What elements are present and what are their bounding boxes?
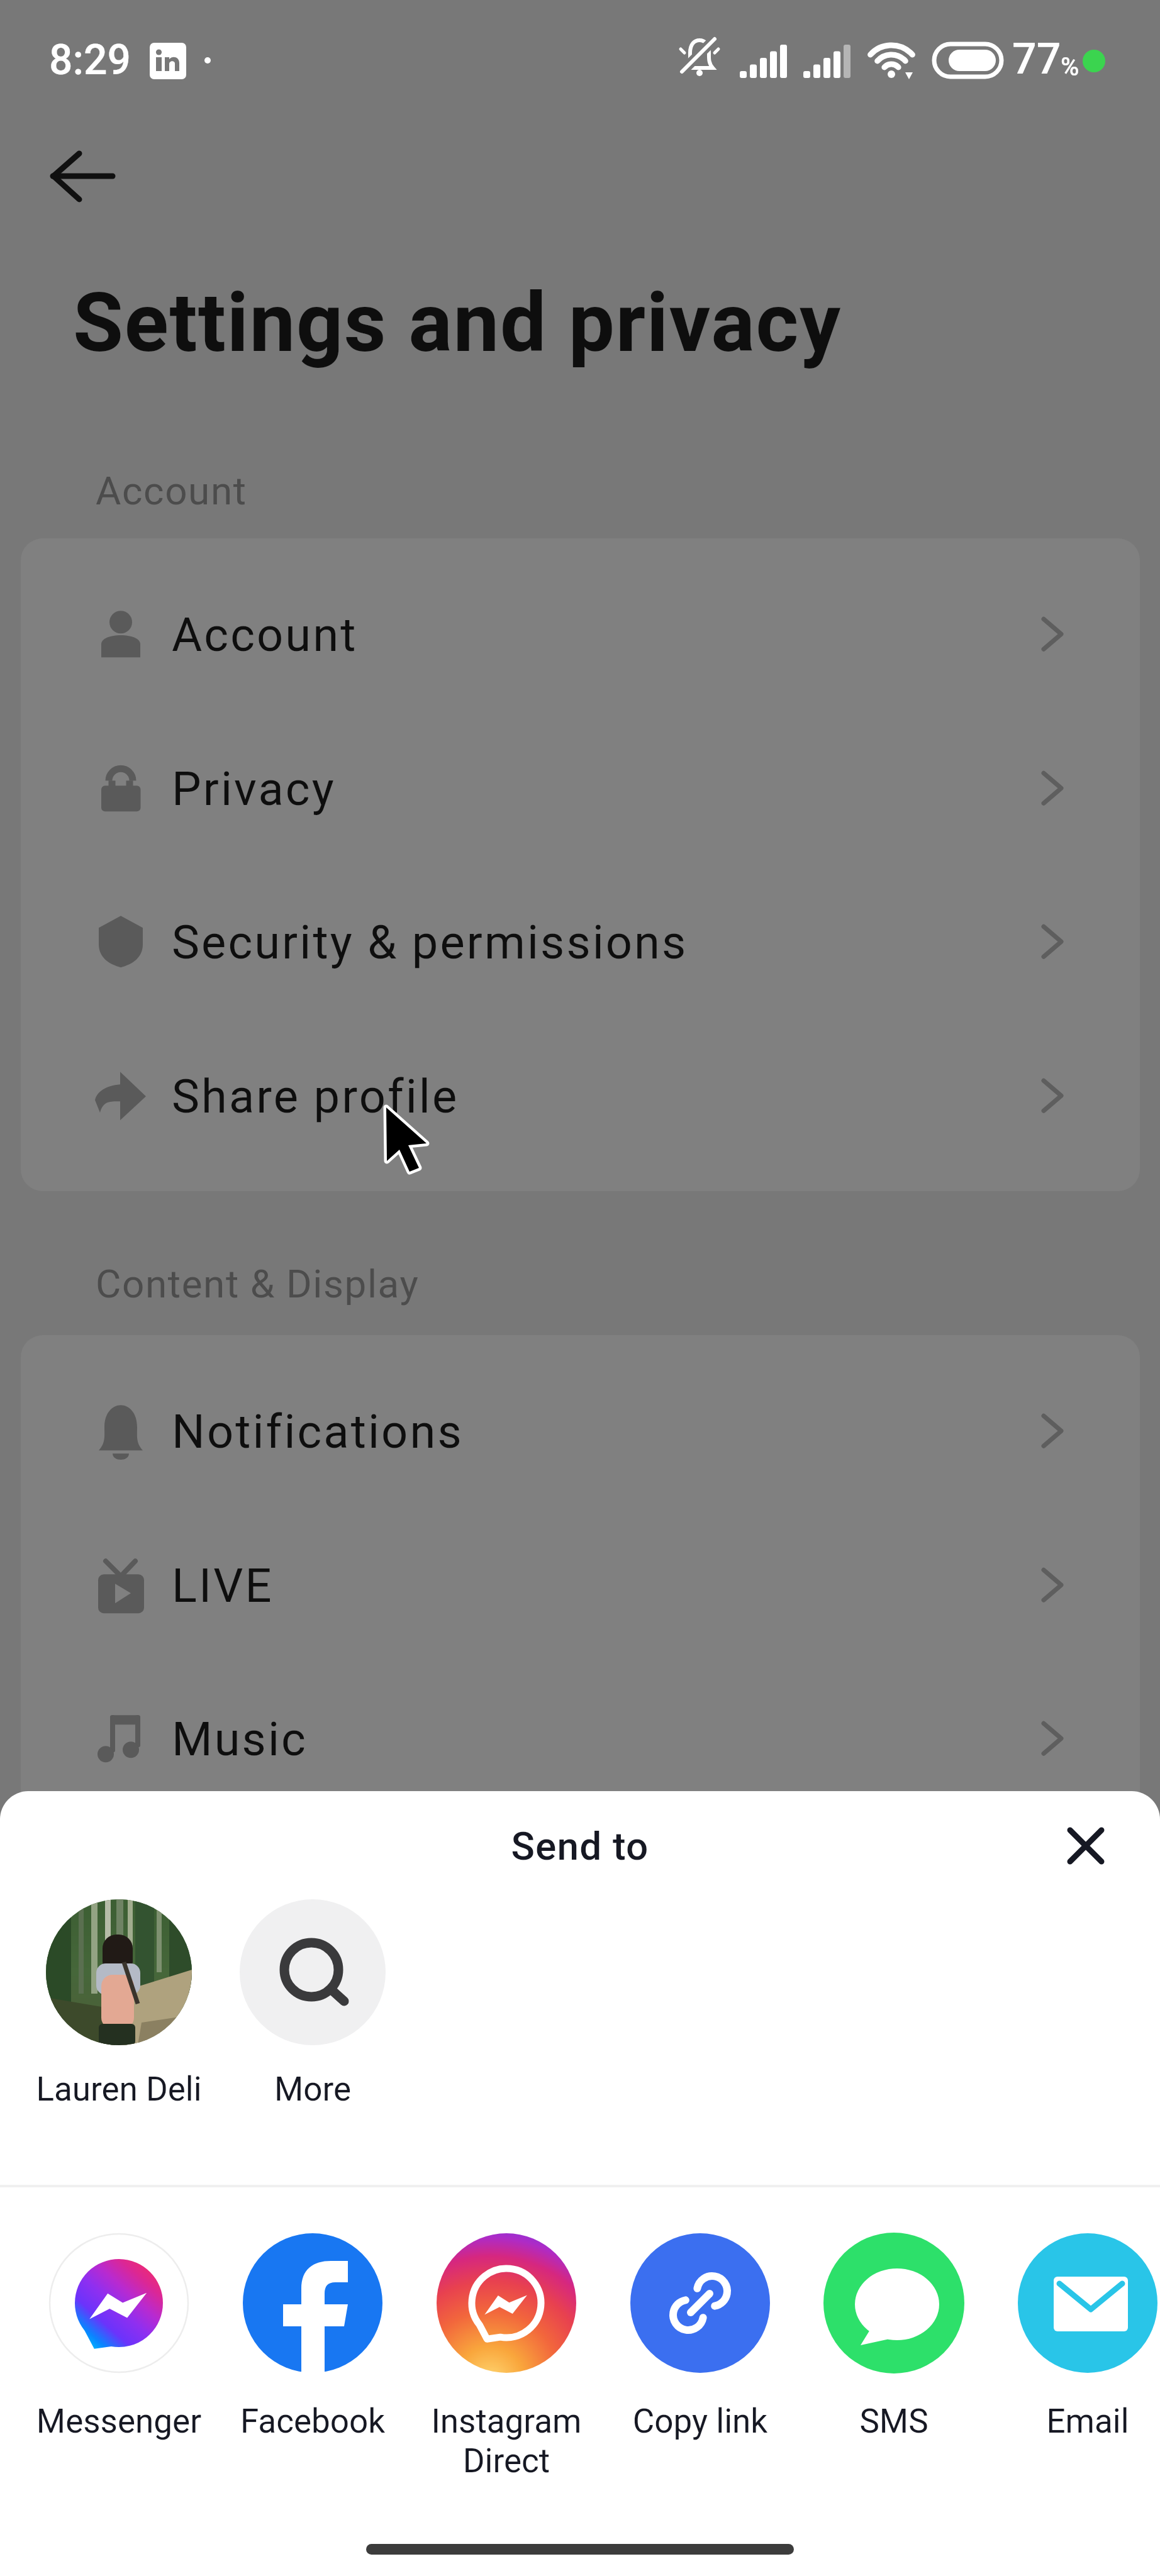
button[interactable]: Music xyxy=(21,1662,1140,1816)
button[interactable]: More xyxy=(216,1899,410,2094)
staticText: Account xyxy=(172,608,358,662)
button[interactable]: Email xyxy=(991,2231,1160,2458)
button[interactable]: Notifications xyxy=(21,1354,1140,1508)
button[interactable]: Account xyxy=(21,557,1140,711)
staticText: Music xyxy=(172,1712,308,1767)
button[interactable]: Privacy xyxy=(21,711,1140,865)
staticText: Security & permissions xyxy=(172,915,688,970)
button[interactable]: Share profile xyxy=(21,1019,1140,1173)
staticText: LIVE xyxy=(172,1558,274,1613)
staticText: Messenger xyxy=(22,2402,216,2441)
button[interactable]: Back xyxy=(25,126,132,226)
staticText: More xyxy=(216,2070,410,2109)
staticText: Email xyxy=(991,2402,1160,2441)
button[interactable]: Facebook xyxy=(216,2231,410,2458)
staticText: Notifications xyxy=(172,1404,464,1459)
button[interactable]: SMS xyxy=(797,2231,991,2458)
staticText: Facebook xyxy=(216,2402,410,2441)
staticText: Account xyxy=(96,468,247,514)
staticText: % xyxy=(1061,52,1079,82)
staticText: Content & Display xyxy=(96,1261,420,1307)
button[interactable]: Lauren Deli xyxy=(22,1899,216,2094)
staticText: Instagram Direct xyxy=(410,2402,603,2480)
button[interactable]: Close xyxy=(1042,1802,1130,1890)
button[interactable]: LIVE xyxy=(21,1508,1140,1662)
staticText: 77 xyxy=(1012,34,1061,84)
button[interactable]: Security & permissions xyxy=(21,865,1140,1019)
staticText: Lauren Deli xyxy=(22,2070,216,2109)
staticText: 8:29 xyxy=(49,36,131,84)
staticText: SMS xyxy=(797,2402,991,2441)
staticText: Privacy xyxy=(172,762,336,816)
staticText: Settings and privacy xyxy=(73,275,842,370)
staticText: Copy link xyxy=(603,2402,797,2441)
button[interactable]: Messenger xyxy=(22,2231,216,2458)
staticText: Share profile xyxy=(172,1069,459,1124)
button[interactable]: Instagram Direct xyxy=(410,2231,603,2458)
staticText: Send to xyxy=(0,1823,1160,1869)
button[interactable]: Copy link xyxy=(603,2231,797,2458)
